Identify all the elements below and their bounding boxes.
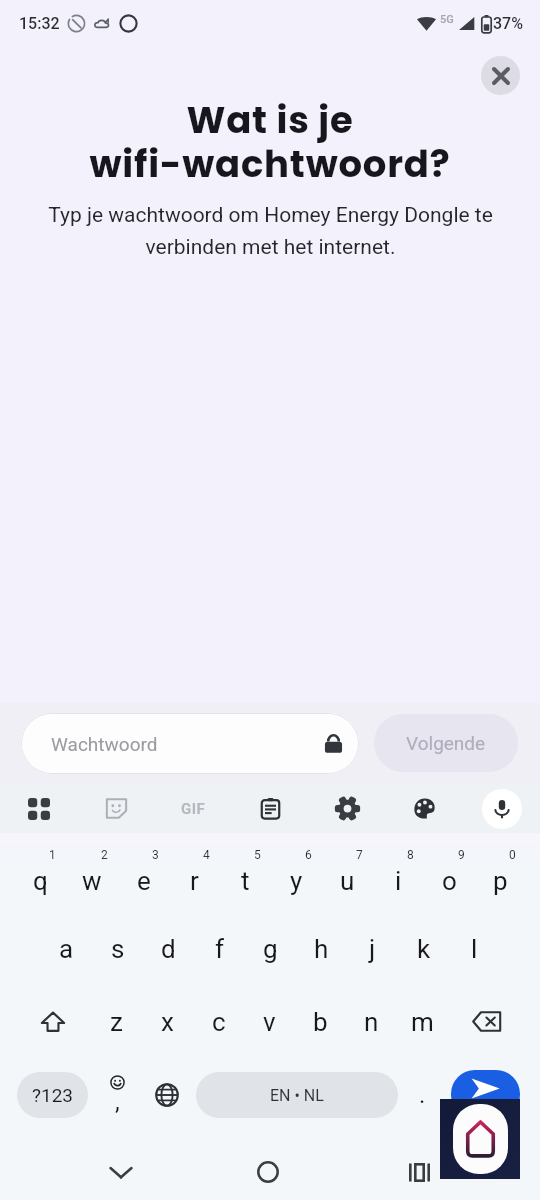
button[interactable]: Clipboard <box>232 784 309 833</box>
button[interactable]: j <box>347 912 398 985</box>
button[interactable]: n <box>346 985 397 1058</box>
staticText: 15:32 <box>19 14 60 33</box>
button[interactable]: 4 <box>169 839 220 912</box>
button[interactable]: Hide keyboard <box>78 1142 164 1200</box>
staticText: e <box>137 866 151 896</box>
staticText: Wachtwoord <box>51 733 324 755</box>
button[interactable]: m <box>397 985 448 1058</box>
staticText: l <box>471 934 478 964</box>
button[interactable]: x <box>142 985 193 1058</box>
button[interactable]: Enter <box>451 1070 520 1119</box>
button[interactable]: Voice input <box>482 789 522 829</box>
button[interactable]: 1 <box>14 839 66 912</box>
staticText: Wat is je wifi-wachtwoord? <box>89 94 451 190</box>
staticText: v <box>263 1007 276 1037</box>
button[interactable]: 2 <box>66 839 118 912</box>
button[interactable]: a <box>40 912 92 985</box>
staticText: 7 <box>356 848 363 862</box>
button[interactable]: Shift <box>14 985 91 1058</box>
staticText: a <box>59 934 74 964</box>
button[interactable]: 6 <box>271 839 322 912</box>
staticText: 6 <box>305 848 312 862</box>
button[interactable]: g <box>245 912 296 985</box>
staticText: , <box>115 1088 120 1116</box>
button[interactable]: EN • NL <box>196 1072 398 1118</box>
staticText: 0 <box>509 848 516 862</box>
staticText: k <box>417 934 431 964</box>
staticText: b <box>313 1007 328 1037</box>
button[interactable]: 3 <box>118 839 169 912</box>
button[interactable]: Language <box>145 1058 189 1131</box>
staticText: 5G <box>440 13 454 26</box>
button[interactable]: Backspace <box>448 985 526 1058</box>
staticText: 9 <box>458 848 465 862</box>
staticText: 37% <box>493 14 523 33</box>
button[interactable]: Wachtwoord <box>21 713 359 774</box>
staticText: 1 <box>49 848 56 862</box>
staticText: j <box>369 934 376 964</box>
button[interactable]: c <box>193 985 244 1058</box>
staticText: Typ je wachtwoord om Homey Energy Dongle… <box>48 203 493 259</box>
button[interactable]: Emoji <box>94 1058 138 1131</box>
button[interactable]: Settings <box>309 784 386 833</box>
button[interactable]: 5 <box>220 839 271 912</box>
staticText: 5 <box>254 848 261 862</box>
staticText: 4 <box>203 848 210 862</box>
staticText: h <box>314 934 329 964</box>
staticText: p <box>493 866 508 896</box>
button[interactable]: k <box>398 912 449 985</box>
button[interactable]: 7 <box>322 839 373 912</box>
staticText: GIF <box>181 800 206 818</box>
staticText: s <box>111 934 125 964</box>
button[interactable]: l <box>449 912 500 985</box>
button[interactable]: Stickers <box>78 784 155 833</box>
staticText: x <box>161 1007 174 1037</box>
staticText: t <box>241 866 250 896</box>
button[interactable]: d <box>143 912 194 985</box>
staticText: 8 <box>407 848 414 862</box>
staticText: f <box>215 934 225 964</box>
staticText: u <box>340 866 355 896</box>
staticText: n <box>364 1007 379 1037</box>
button[interactable]: Themes <box>386 784 463 833</box>
button[interactable]: z <box>91 985 142 1058</box>
staticText: ?123 <box>32 1084 74 1106</box>
button[interactable]: Volgende <box>374 714 518 772</box>
button[interactable]: Apps <box>0 784 78 833</box>
button[interactable]: 8 <box>373 839 424 912</box>
button[interactable]: s <box>92 912 143 985</box>
staticText: w <box>82 866 102 896</box>
staticText: 3 <box>152 848 159 862</box>
button[interactable]: Home <box>225 1142 311 1200</box>
button[interactable]: Recents <box>376 1142 462 1200</box>
staticText: d <box>161 934 176 964</box>
button[interactable]: 0 <box>475 839 526 912</box>
staticText: i <box>395 866 402 896</box>
button[interactable]: 9 <box>424 839 475 912</box>
button[interactable]: Close <box>481 56 520 95</box>
button[interactable]: v <box>244 985 295 1058</box>
staticText: Volgende <box>406 732 486 754</box>
staticText: . <box>419 1081 426 1109</box>
staticText: EN • NL <box>270 1086 324 1105</box>
button[interactable]: GIF <box>155 784 232 833</box>
staticText: 2 <box>101 848 108 862</box>
staticText: c <box>212 1007 226 1037</box>
button[interactable]: b <box>295 985 346 1058</box>
button[interactable]: ?123 <box>17 1072 88 1118</box>
staticText: m <box>411 1007 434 1037</box>
button[interactable]: f <box>194 912 245 985</box>
staticText: z <box>110 1007 123 1037</box>
staticText: r <box>190 866 199 896</box>
staticText: y <box>290 866 303 896</box>
staticText: q <box>33 866 48 896</box>
button[interactable]: . <box>402 1058 442 1131</box>
button[interactable]: h <box>296 912 347 985</box>
staticText: g <box>263 934 278 964</box>
staticText: o <box>442 866 457 896</box>
